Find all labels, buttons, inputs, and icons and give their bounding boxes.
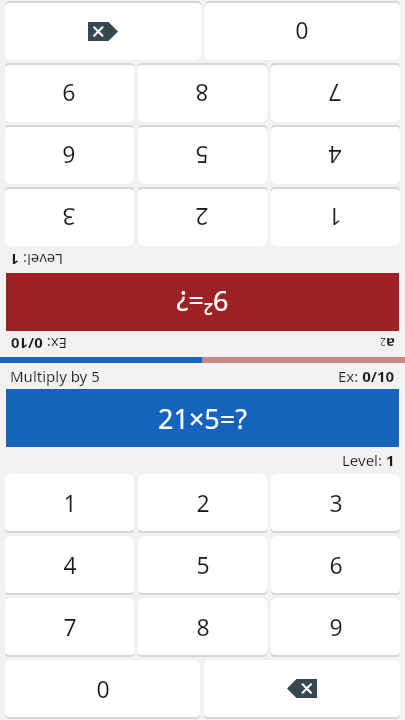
staticText: 8 xyxy=(195,78,209,109)
button[interactable]: 3 xyxy=(5,189,134,246)
button[interactable]: 5 xyxy=(138,536,267,593)
button[interactable]: 1 xyxy=(271,189,400,246)
staticText: 9 xyxy=(62,78,76,109)
staticText: 0 xyxy=(96,673,110,704)
staticText: a2 xyxy=(380,334,395,354)
staticText: Level: 1 xyxy=(342,450,395,470)
button[interactable]: 3 xyxy=(271,474,400,531)
staticText: 8 xyxy=(196,611,210,642)
button[interactable]: 0 xyxy=(5,660,200,717)
staticText: 7 xyxy=(63,611,77,642)
staticText: 9²=? xyxy=(176,283,229,320)
staticText: 7 xyxy=(328,78,342,109)
button[interactable]: 9 xyxy=(5,65,134,122)
button[interactable]: Backspace xyxy=(204,660,400,717)
staticText: 4 xyxy=(328,140,342,171)
button[interactable]: 5 xyxy=(138,127,267,184)
button[interactable]: 7 xyxy=(5,598,134,655)
button[interactable]: 1 xyxy=(5,474,134,531)
staticText: Ex: 0/10 xyxy=(338,366,395,386)
staticText: 3 xyxy=(329,487,343,518)
staticText: Multiply by 5 xyxy=(10,366,100,386)
staticText: 1 xyxy=(328,202,342,233)
button[interactable]: 4 xyxy=(5,536,134,593)
button[interactable]: 9 xyxy=(271,598,400,655)
button[interactable]: 8 xyxy=(138,598,267,655)
button[interactable]: 6 xyxy=(5,127,134,184)
staticText: 5 xyxy=(196,549,210,580)
staticText: 2 xyxy=(196,487,210,518)
staticText: 3 xyxy=(62,202,76,233)
staticText: 1 xyxy=(63,487,77,518)
staticText: 6 xyxy=(329,549,343,580)
staticText: 0 xyxy=(295,16,309,47)
button[interactable]: 2 xyxy=(138,474,267,531)
button[interactable]: 6 xyxy=(271,536,400,593)
button[interactable]: 4 xyxy=(271,127,400,184)
staticText: 5 xyxy=(195,140,209,171)
button[interactable]: 2 xyxy=(138,189,267,246)
staticText: 9 xyxy=(329,611,343,642)
button[interactable]: 8 xyxy=(138,65,267,122)
staticText: Ex: 0/10 xyxy=(10,334,67,354)
staticText: 21×5=? xyxy=(158,400,247,437)
button[interactable]: 0 xyxy=(205,3,400,60)
button[interactable]: Backspace xyxy=(5,3,201,60)
staticText: 4 xyxy=(63,549,77,580)
staticText: Level: 1 xyxy=(10,250,63,270)
button[interactable]: 21×5=? xyxy=(6,389,399,447)
staticText: 6 xyxy=(62,140,76,171)
button[interactable]: 7 xyxy=(271,65,400,122)
staticText: 2 xyxy=(195,202,209,233)
button[interactable]: 9²=? xyxy=(6,273,399,331)
